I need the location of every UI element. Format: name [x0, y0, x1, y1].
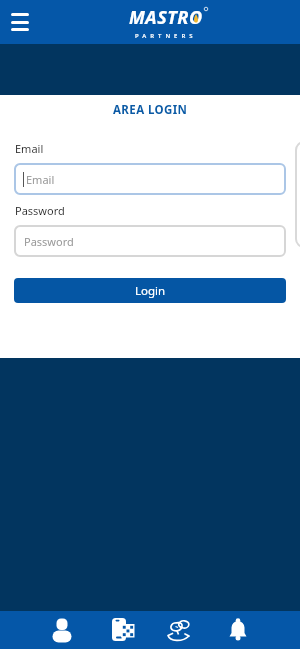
button[interactable]: Login	[14, 278, 286, 303]
button[interactable]: Password	[14, 225, 286, 257]
staticText: Email	[15, 141, 44, 156]
staticText: MASTRO	[129, 5, 203, 30]
button[interactable]	[164, 615, 194, 645]
staticText: Email	[26, 172, 55, 187]
staticText: Login	[135, 283, 166, 299]
button[interactable]	[223, 615, 253, 645]
button[interactable]	[106, 615, 136, 645]
staticText: Password	[15, 203, 65, 218]
button[interactable]: Email	[14, 163, 286, 195]
staticText: PARTNERS	[135, 32, 197, 40]
button[interactable]	[47, 615, 77, 645]
staticText: Password	[24, 234, 74, 249]
button[interactable]	[11, 13, 33, 31]
staticText: AREA LOGIN	[113, 102, 188, 118]
